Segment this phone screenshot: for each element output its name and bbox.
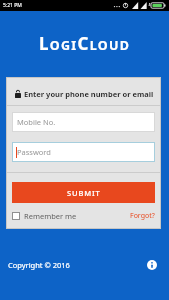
button[interactable]: Information <box>147 260 157 270</box>
button[interactable]: Remember me <box>12 211 77 221</box>
staticText: LOGICLOUD <box>39 32 131 55</box>
button[interactable]: Password <box>12 142 155 162</box>
staticText: Mobile No. <box>17 117 56 127</box>
staticText: Password <box>17 147 51 157</box>
button[interactable]: Mobile No. <box>12 112 155 132</box>
staticText: Enter your phone number or email <box>24 89 154 99</box>
staticText: SUBMIT <box>67 188 101 198</box>
button[interactable]: SUBMIT <box>12 182 155 203</box>
button[interactable]: Forgot? <box>130 211 155 221</box>
staticText: Remember me <box>24 211 77 221</box>
staticText: 5:21 PM <box>3 2 22 9</box>
staticText: Copyright © 2016 <box>8 260 70 270</box>
